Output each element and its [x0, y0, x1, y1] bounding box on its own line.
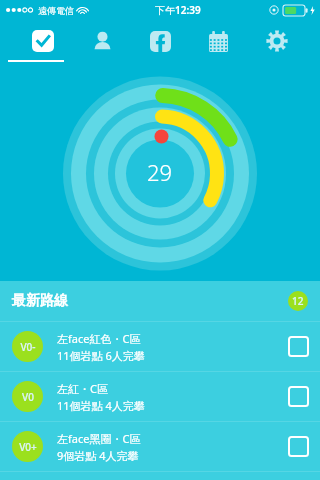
staticText: 下午12:39	[155, 3, 201, 17]
button[interactable]: Mark route complete	[289, 437, 308, 456]
button[interactable]: 最新路線	[0, 281, 320, 321]
staticText: 29	[147, 157, 173, 187]
staticText: V0+	[19, 440, 37, 454]
button[interactable]: Facebook	[145, 26, 175, 56]
button[interactable]: V0-	[0, 322, 320, 371]
button[interactable]: Profile	[87, 26, 117, 56]
button[interactable]: V0+	[0, 422, 320, 471]
staticText: V0	[22, 390, 34, 404]
staticText: 11個岩點 6人完攀	[57, 348, 145, 363]
staticText: V0-	[20, 340, 36, 354]
button[interactable]: Settings	[262, 26, 292, 56]
staticText: 左紅・C區	[57, 381, 108, 396]
button[interactable]: Calendar	[203, 26, 233, 56]
button[interactable]: Routes	[28, 26, 58, 56]
staticText: 11個岩點 4人完攀	[57, 398, 145, 413]
staticText: 12	[292, 294, 304, 308]
staticText: 9個岩點 4人完攀	[57, 448, 139, 463]
button[interactable]: Mark route complete	[289, 337, 308, 356]
staticText: 遠傳電信	[38, 5, 74, 16]
button[interactable]: V0	[0, 372, 320, 421]
button[interactable]: Mark route complete	[289, 387, 308, 406]
staticText: 最新路線	[12, 292, 68, 310]
staticText: 左face黑圈・C區	[57, 431, 141, 446]
staticText: 左face紅色・C區	[57, 331, 141, 346]
